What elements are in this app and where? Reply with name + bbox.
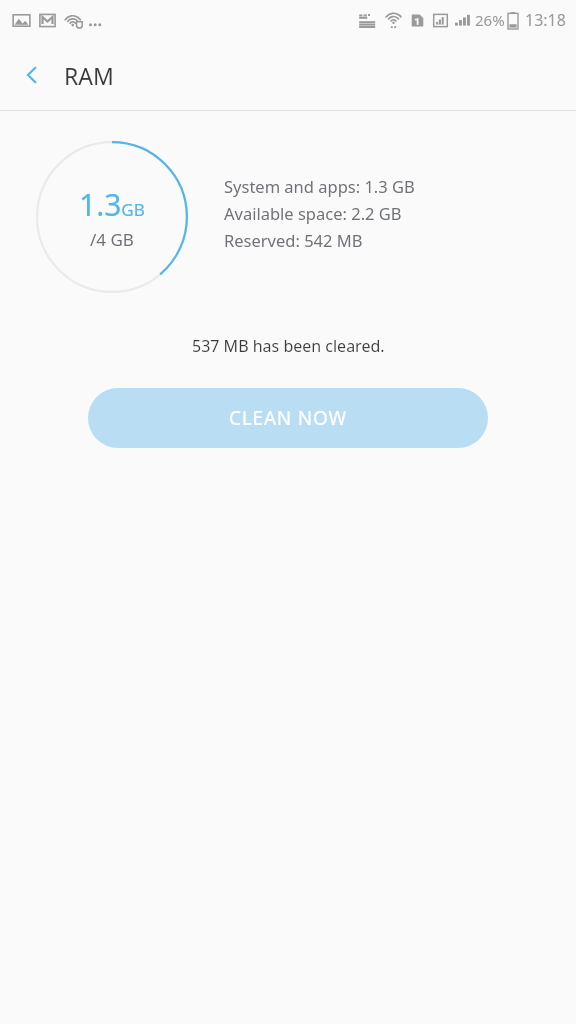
staticText: 1.3GB [79, 184, 145, 225]
staticText: RAM [64, 60, 114, 91]
button[interactable]: CLEAN NOW [88, 388, 488, 448]
staticText: System and apps: 1.3 GB [224, 175, 415, 197]
staticText: Available space: 2.2 GB [224, 202, 402, 224]
button[interactable]: Back [8, 51, 56, 99]
staticText: CLEAN NOW [229, 405, 348, 431]
staticText: 26% [475, 10, 505, 30]
staticText: /4 GB [90, 228, 134, 251]
staticText: 537 MB has been cleared. [192, 335, 385, 357]
staticText: 13:18 [525, 9, 566, 31]
staticText: Reserved: 542 MB [224, 229, 363, 251]
